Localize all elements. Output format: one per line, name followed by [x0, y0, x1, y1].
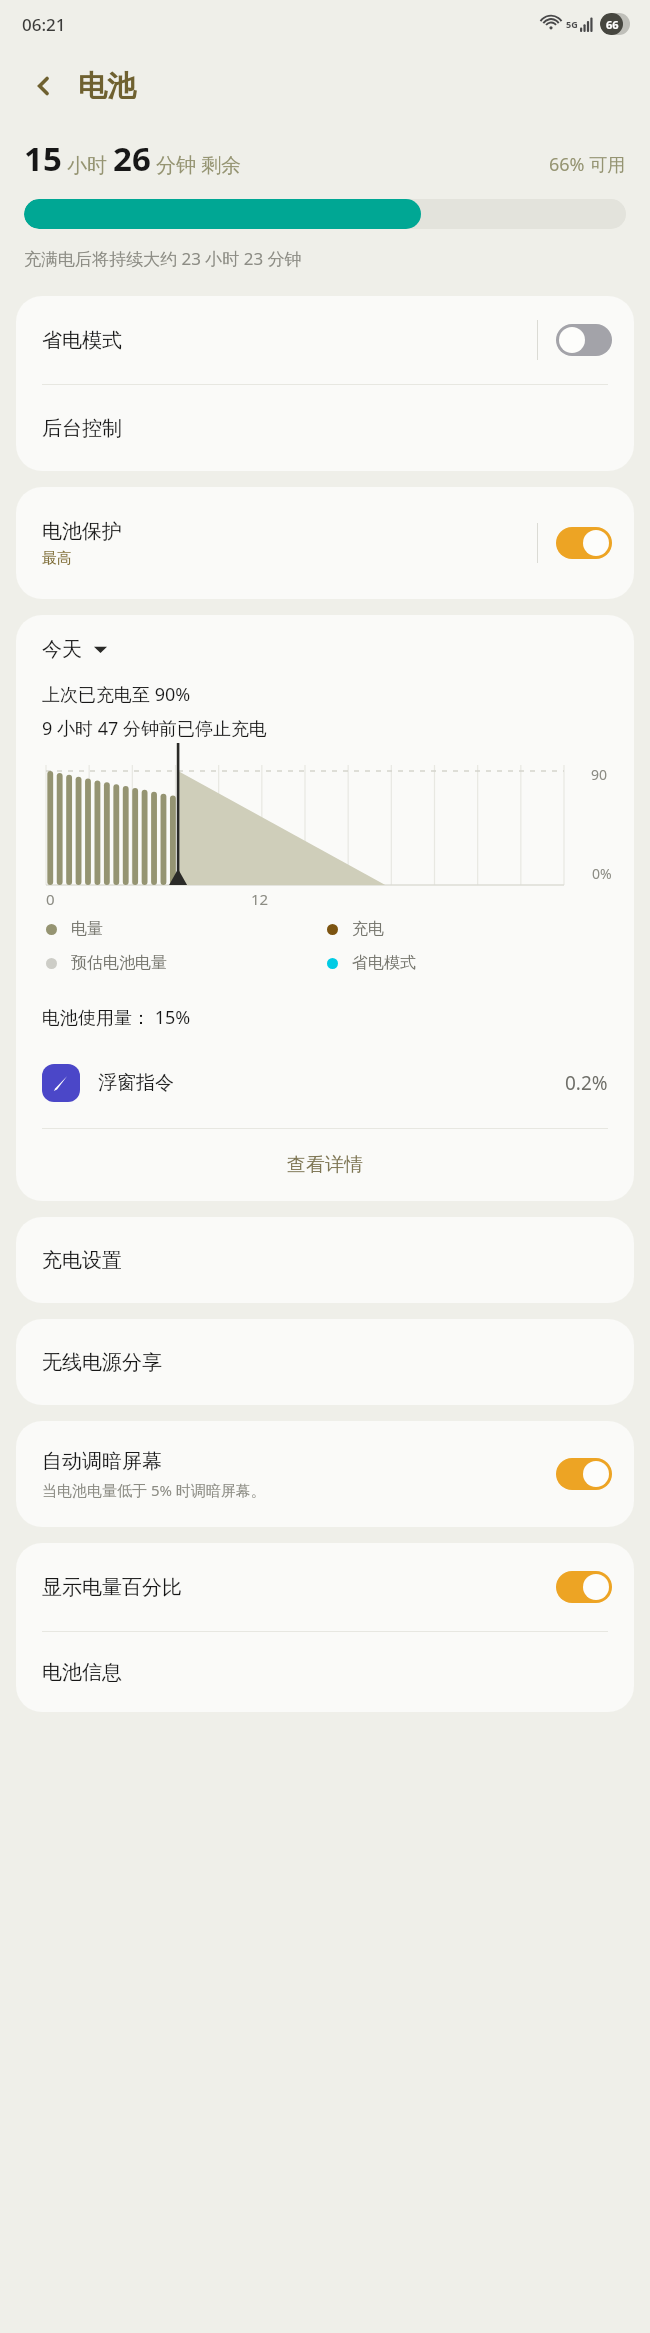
button[interactable]: Toggle [556, 527, 612, 559]
staticText: 预估电池电量 [71, 953, 167, 973]
staticText: 省电模式 [42, 328, 122, 353]
staticText: 15 [24, 136, 62, 181]
staticText: 电池信息 [42, 1660, 122, 1685]
button[interactable]: 电池信息 [16, 1632, 634, 1712]
button[interactable]: 查看详情 [16, 1129, 634, 1201]
button[interactable]: Toggle [556, 324, 612, 356]
staticText: 0 [46, 889, 55, 909]
button[interactable]: 后台控制 [16, 385, 634, 471]
staticText: 电量 [71, 919, 103, 939]
staticText: 分钟 剩余 [156, 151, 242, 178]
staticText: 66% 可用 [549, 152, 626, 177]
staticText: 充电设置 [42, 1248, 122, 1273]
staticText: 浮窗指令 [98, 1071, 174, 1095]
staticText: 充满电后将持续大约 23 小时 23 分钟 [24, 247, 302, 270]
button[interactable]: Toggle [556, 1458, 612, 1490]
staticText: 电池保护 [42, 519, 122, 544]
staticText: 9 小时 47 分钟前已停止充电 [42, 716, 267, 741]
staticText: 显示电量百分比 [42, 1575, 182, 1600]
button[interactable]: 自动调暗屏幕 [16, 1421, 634, 1527]
staticText: 5G [566, 18, 578, 30]
button[interactable]: Toggle [556, 1571, 612, 1603]
staticText: 省电模式 [352, 953, 416, 973]
staticText: 最高 [42, 549, 72, 568]
button[interactable]: Back [20, 62, 68, 110]
staticText: 12 [251, 889, 269, 909]
button[interactable]: 电池保护 [16, 487, 634, 599]
button[interactable]: 显示电量百分比 [16, 1543, 634, 1631]
staticText: 0% [592, 864, 612, 883]
staticText: 66 [606, 17, 619, 32]
staticText: 小时 [67, 153, 107, 178]
staticText: 电池使用量： 15% [42, 1005, 191, 1030]
staticText: 当电池电量低于 5% 时调暗屏幕。 [42, 1480, 266, 1500]
button[interactable]: 浮窗指令 [16, 1052, 634, 1114]
button[interactable]: 充电设置 [16, 1217, 634, 1303]
staticText: 06:21 [22, 13, 66, 36]
staticText: 90 [591, 765, 608, 784]
staticText: 查看详情 [287, 1153, 363, 1177]
button[interactable]: 省电模式 [16, 296, 634, 384]
staticText: 无线电源分享 [42, 1350, 162, 1375]
staticText: 自动调暗屏幕 [42, 1449, 162, 1474]
staticText: 26 [113, 136, 151, 181]
staticText: 电池 [78, 68, 136, 105]
staticText: 上次已充电至 90% [42, 682, 191, 707]
staticText: 充电 [352, 919, 384, 939]
staticText: 0.2% [565, 1070, 608, 1096]
button[interactable]: 今天 [42, 637, 107, 662]
staticText: 后台控制 [42, 416, 122, 441]
staticText: 今天 [42, 637, 82, 662]
button[interactable]: 无线电源分享 [16, 1319, 634, 1405]
